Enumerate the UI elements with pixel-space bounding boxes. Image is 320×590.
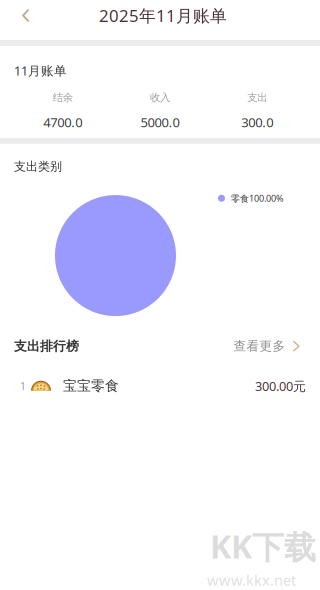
staticText: 支出 [247,91,267,104]
staticText: KK下载 [210,524,316,568]
staticText: 零食100.00% [231,192,284,204]
staticText: 1 [20,379,26,393]
button[interactable]: 1 [0,354,320,395]
staticText: 11月账单 [14,62,67,79]
button[interactable]: 查看更多 [233,338,300,354]
button[interactable]: Back [11,1,41,29]
staticText: 支出排行榜 [14,338,79,354]
staticText: 300.00元 [255,377,306,395]
staticText: 查看更多 [233,338,285,354]
staticText: 300.0 [241,113,273,131]
staticText: www.kkx.net [207,570,296,590]
staticText: 收入 [150,91,170,104]
staticText: 宝宝零食 [63,377,119,395]
staticText: 4700.0 [43,113,82,131]
staticText: 支出类别 [14,159,62,174]
staticText: 5000.0 [140,113,179,131]
staticText: 2025年11月账单 [99,4,227,27]
staticText: 结余 [53,91,73,104]
